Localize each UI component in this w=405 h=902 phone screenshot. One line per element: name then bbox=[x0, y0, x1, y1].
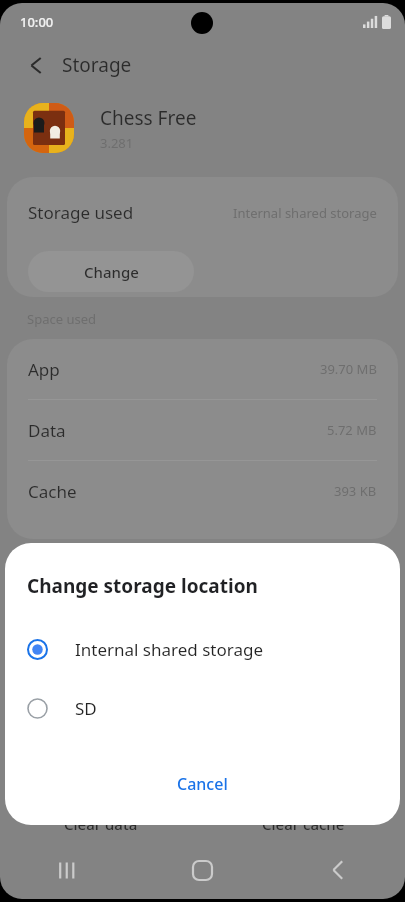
button[interactable]: Recents bbox=[0, 841, 135, 899]
button[interactable]: Home bbox=[135, 841, 270, 899]
staticText: App bbox=[28, 358, 60, 381]
staticText: Clear data bbox=[64, 814, 138, 834]
button[interactable]: Data bbox=[7, 400, 398, 460]
button[interactable]: Back bbox=[20, 49, 52, 81]
button[interactable]: Internal shared storage bbox=[5, 628, 400, 670]
staticText: Internal shared storage bbox=[233, 204, 377, 222]
staticText: 5.72 MB bbox=[327, 421, 377, 439]
staticText: Data bbox=[28, 419, 66, 442]
button[interactable]: App bbox=[7, 339, 398, 399]
staticText: Change storage location bbox=[27, 573, 258, 599]
staticText: 393 KB bbox=[334, 482, 377, 500]
button[interactable]: Clear data bbox=[0, 807, 202, 841]
staticText: Cancel bbox=[177, 773, 228, 795]
button[interactable]: Cancel bbox=[5, 757, 400, 811]
staticText: Change bbox=[84, 262, 139, 282]
staticText: Cache bbox=[28, 480, 77, 503]
staticText: SD bbox=[75, 697, 97, 720]
button[interactable]: Change bbox=[28, 251, 194, 292]
staticText: 3.281 bbox=[100, 134, 134, 152]
staticText: Chess Free bbox=[100, 105, 197, 131]
button[interactable]: Cache bbox=[7, 461, 398, 521]
button[interactable]: Clear cache bbox=[202, 807, 405, 841]
staticText: 10:00 bbox=[20, 13, 54, 31]
staticText: Storage used bbox=[28, 201, 134, 224]
staticText: Storage bbox=[62, 52, 132, 78]
staticText: Space used bbox=[27, 310, 96, 328]
button[interactable]: SD bbox=[5, 687, 400, 729]
staticText: Internal shared storage bbox=[75, 638, 264, 661]
button[interactable]: Back bbox=[270, 841, 405, 899]
staticText: 39.70 MB bbox=[320, 360, 377, 378]
staticText: Clear cache bbox=[262, 814, 345, 834]
